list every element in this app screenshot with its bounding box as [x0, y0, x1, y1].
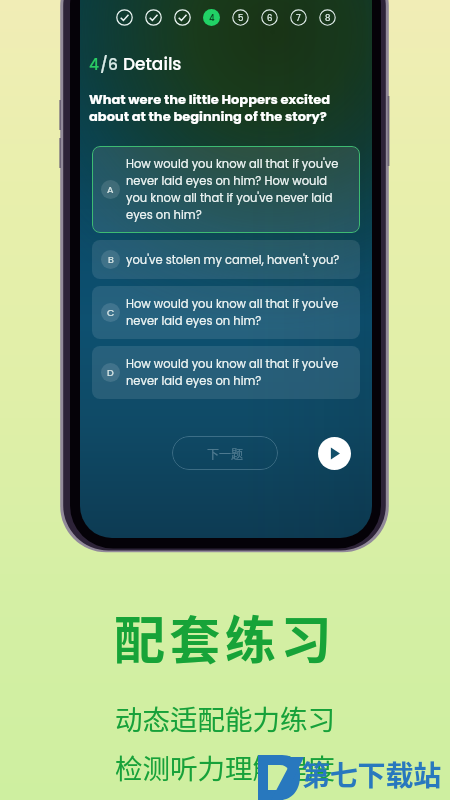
button[interactable]: 6: [255, 3, 284, 32]
button[interactable]: [139, 3, 168, 32]
staticText: 6: [267, 12, 273, 24]
staticText: B: [108, 253, 114, 266]
staticText: you've stolen my camel, haven't you?: [126, 252, 340, 268]
button[interactable]: A: [92, 146, 360, 233]
staticText: 7: [296, 12, 301, 24]
button[interactable]: [168, 3, 197, 32]
staticText: How would you know all that if you've ne…: [126, 156, 342, 223]
button[interactable]: C: [92, 286, 360, 339]
button[interactable]: 下一题: [172, 436, 278, 470]
staticText: 5: [238, 12, 244, 24]
staticText: 配套练习: [114, 600, 337, 674]
staticText: How would you know all that if you've ne…: [126, 356, 342, 389]
staticText: 4: [89, 54, 100, 76]
button[interactable]: Play: [318, 437, 351, 470]
staticText: How would you know all that if you've ne…: [126, 296, 342, 329]
staticText: 下一题: [207, 445, 244, 462]
staticText: A: [107, 183, 114, 196]
staticText: 动态适配能力练习: [115, 698, 335, 738]
staticText: 检测听力理解程度: [115, 747, 335, 787]
staticText: Details: [123, 52, 182, 76]
staticText: D: [107, 366, 114, 379]
button[interactable]: 4: [197, 3, 226, 32]
button[interactable]: 8: [313, 3, 342, 32]
staticText: 4: [209, 12, 215, 24]
button[interactable]: D: [92, 346, 360, 399]
button[interactable]: 7: [284, 3, 313, 32]
staticText: What were the little Hoppers excited abo…: [89, 90, 352, 126]
staticText: 第七下载站: [302, 754, 442, 795]
staticText: /6: [100, 54, 118, 76]
button[interactable]: B: [92, 240, 360, 279]
button[interactable]: [110, 3, 139, 32]
staticText: 8: [325, 12, 331, 24]
button[interactable]: 5: [226, 3, 255, 32]
staticText: C: [107, 306, 115, 319]
